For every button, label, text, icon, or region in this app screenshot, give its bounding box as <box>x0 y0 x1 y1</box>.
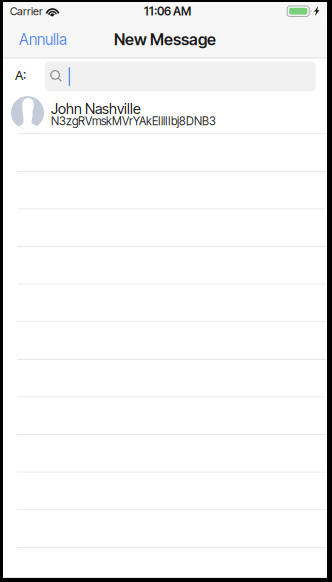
staticText: A: <box>15 67 26 83</box>
staticText: N3zgRVmskMVrYAkEIilIIbj8DNB3 <box>51 114 216 128</box>
staticText: Annulla <box>19 30 67 49</box>
staticText: New Message <box>114 30 216 49</box>
staticText: 11:06 AM <box>144 4 191 18</box>
button[interactable]: Annulla <box>3 20 79 58</box>
staticText: John Nashville <box>51 100 141 117</box>
button[interactable]: John Nashville <box>3 92 327 133</box>
staticText: Carrier <box>10 5 43 18</box>
